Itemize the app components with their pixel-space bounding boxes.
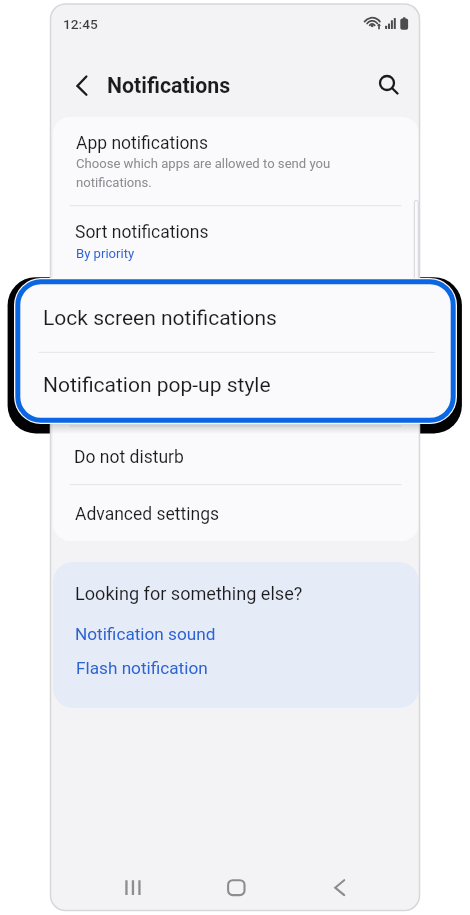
staticText: Lock screen notifications xyxy=(76,294,271,315)
button[interactable]: Notification sound xyxy=(75,624,227,650)
button[interactable]: Search xyxy=(365,61,409,105)
staticText: Lock screen notifications xyxy=(43,306,277,331)
button[interactable]: App notifications xyxy=(53,117,419,205)
staticText: Flash notification xyxy=(76,658,208,678)
staticText: Notification pop-up style xyxy=(43,373,271,398)
button[interactable]: Navigate up xyxy=(60,63,104,107)
staticText: Choose which apps are allowed to send yo… xyxy=(76,156,331,171)
button[interactable]: Back xyxy=(318,868,360,908)
button[interactable]: Home xyxy=(215,868,257,908)
staticText: By priority xyxy=(76,246,135,261)
staticText: Notification sound xyxy=(75,624,216,644)
staticText: Show content xyxy=(76,318,156,333)
staticText: notifications. xyxy=(76,175,152,190)
button[interactable]: Flash notification xyxy=(76,658,228,684)
button[interactable]: Lock screen notifications xyxy=(20,284,451,352)
staticText: Notifications xyxy=(107,73,231,98)
button[interactable]: Lock screen notifications xyxy=(53,278,419,352)
button[interactable]: Notification pop-up style xyxy=(20,352,451,417)
button[interactable]: Notification pop-up style xyxy=(53,352,419,426)
staticText: Advanced settings xyxy=(75,504,220,525)
button[interactable]: Sort notifications xyxy=(53,206,419,278)
staticText: 12:45 xyxy=(63,16,98,32)
staticText: Notification pop-up style xyxy=(76,368,266,389)
staticText: Do not disturb xyxy=(74,447,184,468)
button[interactable]: Advanced settings xyxy=(53,485,419,541)
staticText: Looking for something else? xyxy=(75,583,303,604)
button[interactable]: Do not disturb xyxy=(53,426,419,484)
staticText: App notifications xyxy=(76,133,209,154)
button[interactable]: Recent apps xyxy=(112,868,154,908)
staticText: Sort notifications xyxy=(75,222,209,243)
